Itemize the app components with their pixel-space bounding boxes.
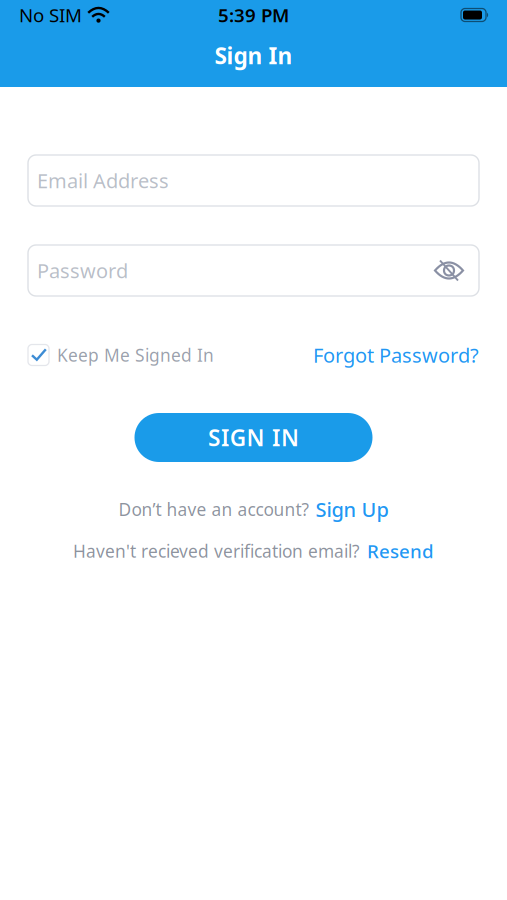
button[interactable]: Sign Up: [315, 496, 388, 523]
staticText: Password: [37, 257, 128, 284]
staticText: Haven't recieved verification email?: [73, 539, 360, 562]
staticText: Resend: [367, 539, 434, 563]
button[interactable]: Keep Me Signed In: [28, 343, 214, 366]
staticText: Forgot Password?: [313, 342, 479, 368]
staticText: Don’t have an account?: [118, 498, 309, 521]
staticText: 5:39 PM: [218, 3, 289, 27]
staticText: SIGN IN: [208, 422, 299, 452]
staticText: Sign In: [214, 40, 292, 70]
button[interactable]: Resend: [367, 539, 434, 563]
staticText: Keep Me Signed In: [57, 343, 214, 366]
staticText: No SIM: [19, 3, 82, 27]
staticText: Sign Up: [315, 496, 388, 523]
button[interactable]: Show Password: [434, 258, 464, 282]
staticText: Email Address: [37, 167, 169, 194]
button[interactable]: SIGN IN: [134, 413, 372, 462]
button[interactable]: Forgot Password?: [313, 342, 479, 368]
